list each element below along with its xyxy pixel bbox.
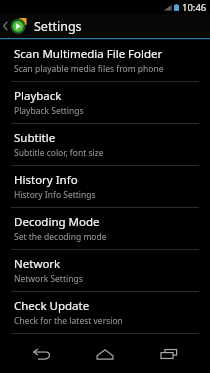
staticText: Scan playable media files from phone — [14, 63, 164, 75]
button[interactable]: Up — [0, 14, 210, 38]
staticText: History Info — [14, 172, 78, 188]
button[interactable]: Decoding Mode — [0, 208, 210, 249]
staticText: 10:46 — [182, 1, 207, 14]
staticText: Subtitle color, font size — [14, 147, 104, 159]
staticText: Network Settings — [14, 273, 83, 285]
button[interactable]: Recent apps — [146, 337, 192, 371]
staticText: Network — [14, 256, 61, 272]
staticText: Check for the latest version — [14, 315, 123, 327]
staticText: Subtitle — [14, 130, 56, 146]
staticText: Check Update — [14, 298, 90, 314]
button[interactable]: Subtitle — [0, 124, 210, 165]
other: Up — [2, 20, 9, 32]
staticText: Scan Multimedia File Folder — [14, 46, 163, 62]
staticText: Set the decoding mode — [14, 231, 107, 243]
button[interactable]: Check Update — [0, 292, 210, 333]
staticText: Playback — [14, 88, 62, 104]
button[interactable]: Playback — [0, 82, 210, 123]
button[interactable]: Back — [18, 337, 64, 371]
button[interactable]: Home — [82, 337, 128, 371]
staticText: History Info Settings — [14, 189, 96, 201]
button[interactable]: Scan Multimedia File Folder — [0, 40, 210, 81]
staticText: Settings — [34, 18, 82, 35]
button[interactable]: Network — [0, 250, 210, 291]
staticText: Decoding Mode — [14, 214, 100, 230]
staticText: Playback Settings — [14, 105, 84, 117]
button[interactable]: History Info — [0, 166, 210, 207]
